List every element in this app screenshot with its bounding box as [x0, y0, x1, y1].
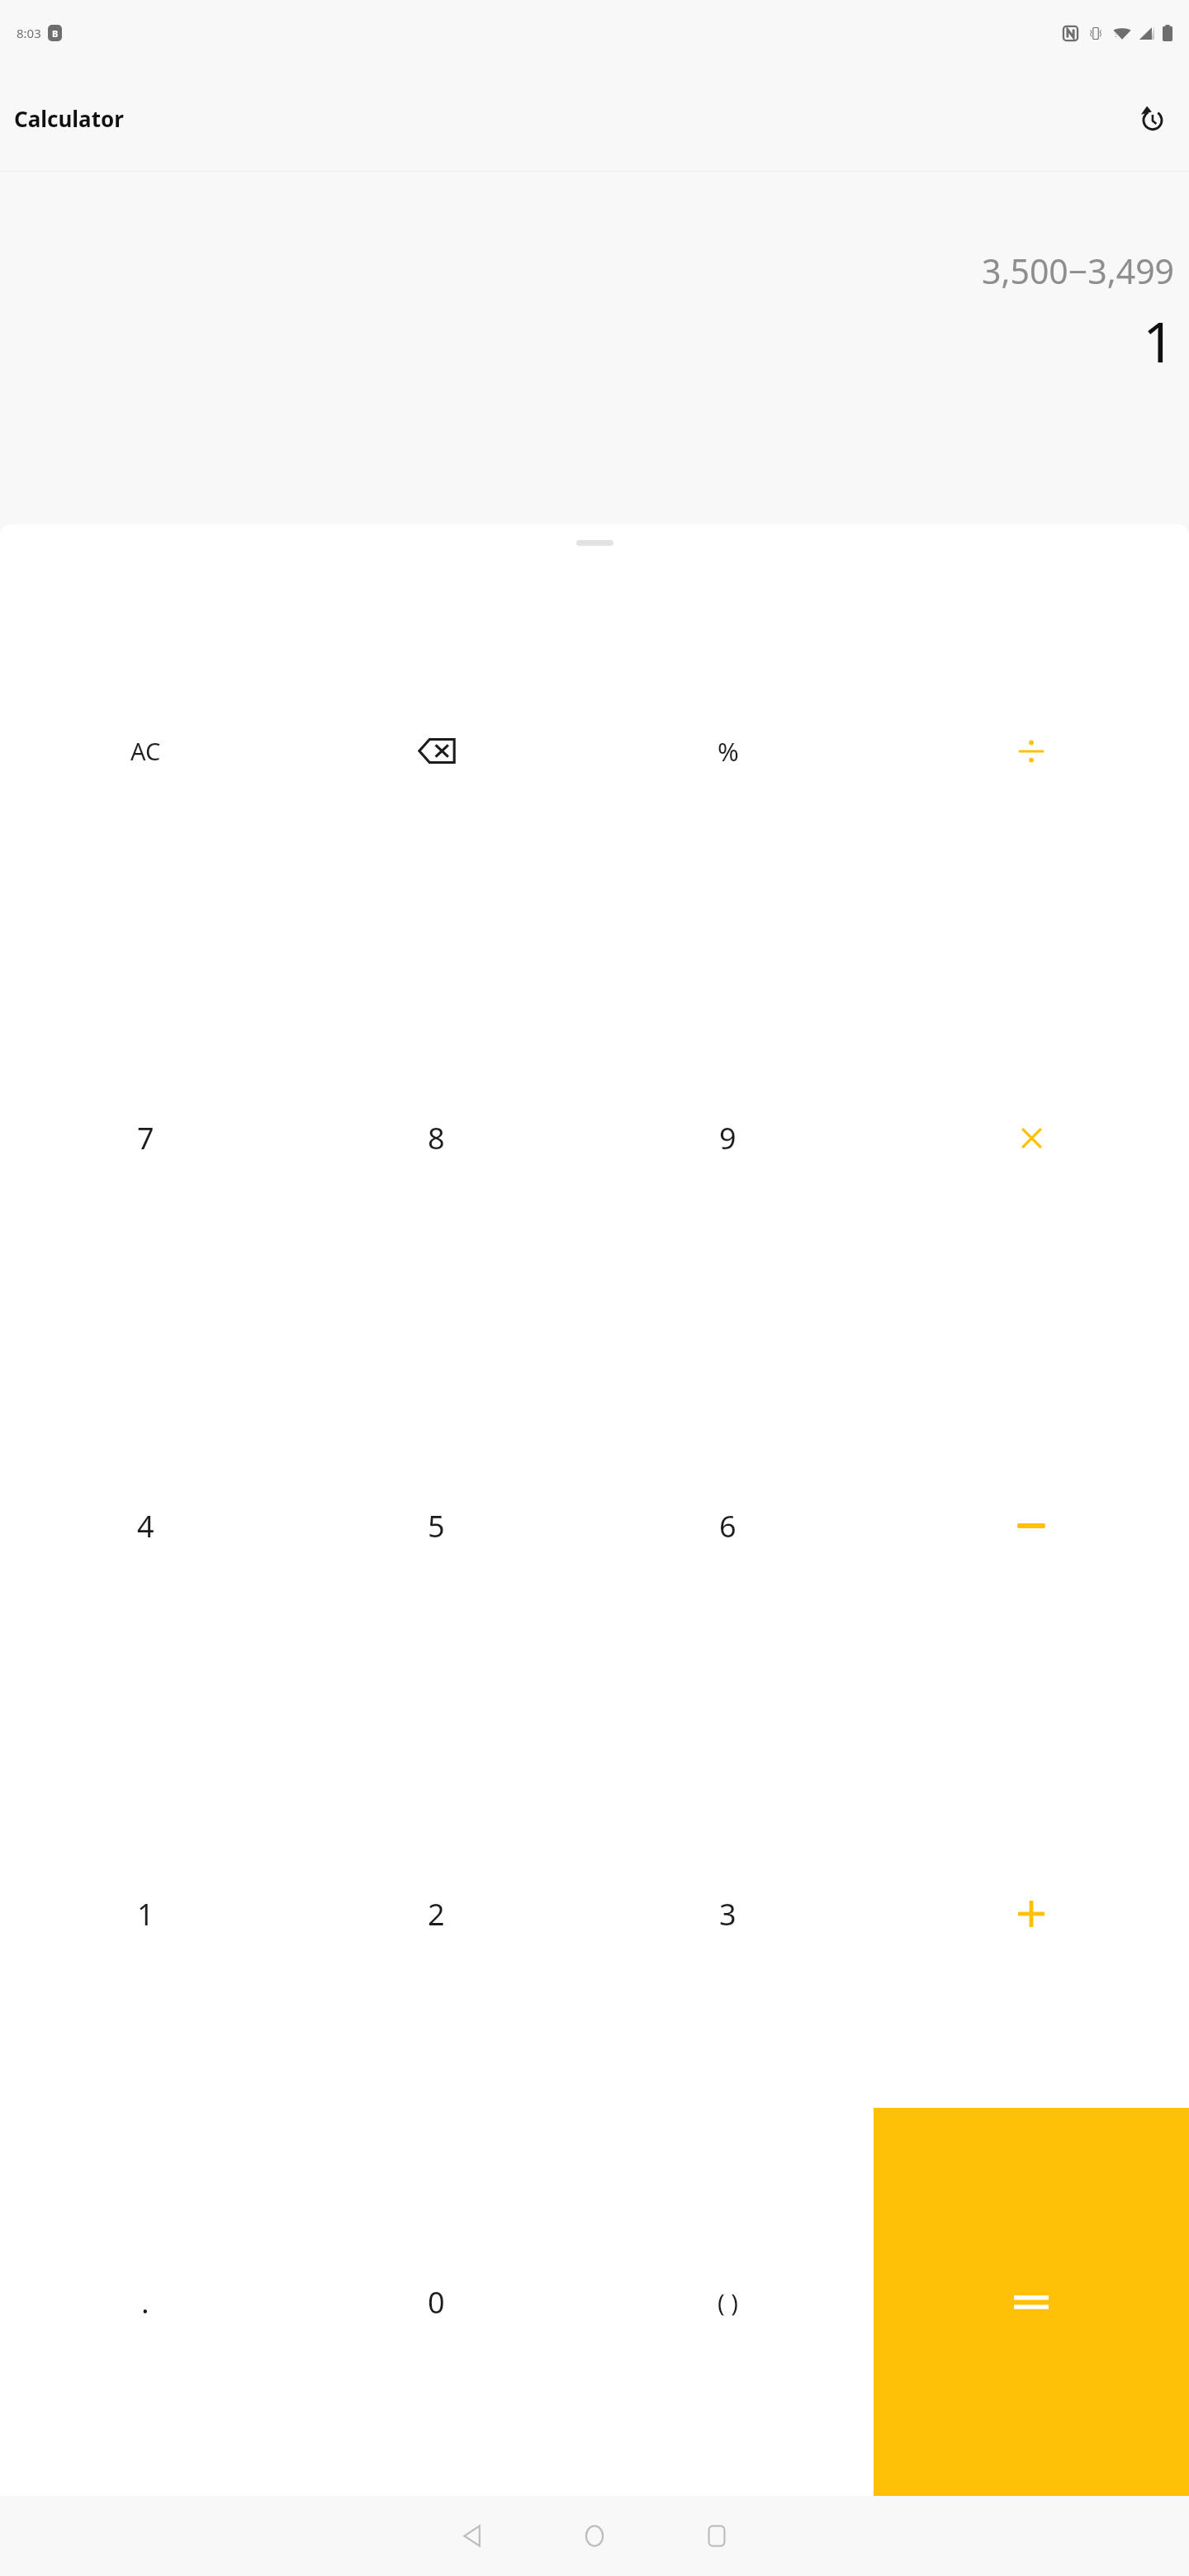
staticText: 8 — [428, 1118, 445, 1158]
button[interactable]: % — [582, 557, 874, 945]
staticText: 8:03 — [17, 25, 41, 41]
staticText: 7 — [137, 1118, 154, 1158]
staticText: . — [141, 2282, 149, 2323]
button[interactable]: 7 — [0, 945, 291, 1332]
staticText: 1 — [137, 1894, 154, 1934]
button[interactable]: 9 — [582, 945, 874, 1332]
button[interactable]: Equals — [874, 2108, 1189, 2496]
staticText: 2 — [428, 1894, 445, 1934]
button[interactable]: 6 — [582, 1332, 874, 1720]
staticText: Calculator — [14, 104, 124, 133]
staticText: B — [52, 27, 59, 40]
button[interactable]: Back — [411, 2496, 533, 2576]
button[interactable]: 1 — [0, 1720, 291, 2108]
button[interactable]: 0 — [291, 2108, 582, 2496]
button[interactable]: Multiply — [874, 945, 1189, 1332]
staticText: 3 — [719, 1894, 737, 1934]
staticText: % — [718, 734, 739, 769]
button[interactable]: 3 — [582, 1720, 874, 2108]
button[interactable]: Recents — [656, 2496, 778, 2576]
staticText: 4 — [137, 1506, 154, 1546]
button[interactable]: Home — [533, 2496, 656, 2576]
staticText: 6 — [719, 1506, 737, 1546]
button[interactable]: AC — [0, 557, 291, 945]
button[interactable]: Minus — [874, 1332, 1189, 1720]
button[interactable]: 8 — [291, 945, 582, 1332]
button[interactable]: Divide — [874, 557, 1189, 945]
button[interactable]: 5 — [291, 1332, 582, 1720]
staticText: 0 — [428, 2282, 445, 2323]
staticText: 5 — [428, 1506, 445, 1546]
button[interactable]: Plus — [874, 1720, 1189, 2108]
staticText: 9 — [719, 1118, 737, 1158]
button[interactable]: History — [1130, 97, 1172, 140]
staticText: 3,500−3,499 — [982, 248, 1175, 294]
button[interactable]: 2 — [291, 1720, 582, 2108]
staticText: AC — [130, 735, 161, 767]
button[interactable]: ( ) — [582, 2108, 874, 2496]
staticText: ( ) — [718, 2286, 738, 2318]
button[interactable]: Backspace — [291, 557, 582, 945]
button[interactable]: 4 — [0, 1332, 291, 1720]
staticText: 1 — [1143, 302, 1175, 379]
